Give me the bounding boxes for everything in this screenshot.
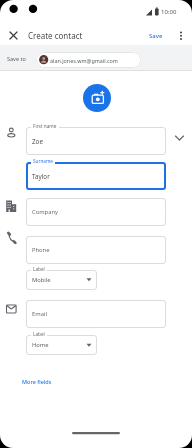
staticText: Label — [33, 266, 45, 272]
staticText: Phone — [32, 246, 50, 254]
staticText: Create contact — [28, 30, 83, 41]
staticText: First name — [33, 123, 57, 129]
staticText: Surname — [33, 158, 53, 164]
button[interactable] — [3, 28, 25, 44]
staticText: Mobile — [32, 276, 51, 284]
staticText: Home — [32, 341, 49, 349]
staticText: Label — [33, 331, 45, 337]
staticText: Save — [149, 32, 163, 40]
staticText: More fields — [22, 378, 52, 385]
button[interactable]: alan.jones.wm@gmail.com — [36, 52, 141, 68]
button[interactable] — [83, 84, 111, 112]
staticText: Zoe — [32, 137, 43, 146]
button[interactable]: Save — [144, 28, 168, 43]
button[interactable]: Email — [26, 300, 166, 328]
button[interactable]: More fields — [22, 378, 52, 385]
button[interactable]: Company — [26, 198, 166, 226]
button[interactable]: Zoe — [26, 127, 166, 155]
staticText: alan.jones.wm@gmail.com — [50, 57, 118, 64]
button[interactable]: Phone — [26, 236, 166, 264]
staticText: Save to — [7, 55, 26, 62]
staticText: Taylor — [32, 172, 50, 181]
button[interactable]: Mobile — [26, 270, 97, 290]
staticText: Company — [32, 208, 58, 216]
button[interactable]: Taylor — [26, 162, 166, 190]
button[interactable] — [174, 28, 188, 43]
staticText: 10:00 — [161, 8, 177, 16]
button[interactable]: Home — [26, 335, 97, 355]
staticText: Email — [32, 310, 47, 318]
